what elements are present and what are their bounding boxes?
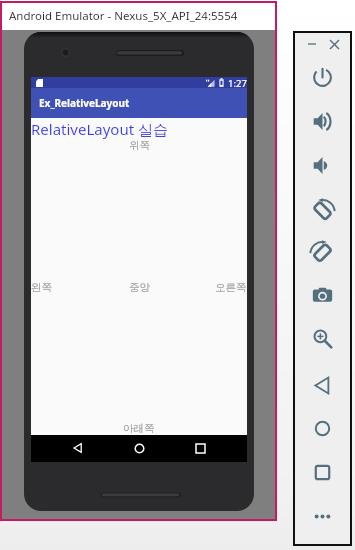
staticText: 왼쪽 xyxy=(31,281,52,294)
staticText: RelativeLayout 실습 xyxy=(31,119,169,139)
button[interactable]: Volume down xyxy=(300,147,344,183)
button[interactable]: Screenshot xyxy=(300,277,344,313)
button[interactable]: Minimize xyxy=(303,35,321,53)
button[interactable]: Home xyxy=(300,410,344,446)
staticText: 오른쪽 xyxy=(215,281,247,294)
button[interactable]: More xyxy=(300,498,344,534)
staticText: 1:27 xyxy=(228,77,247,88)
staticText: Ex_RelativeLayout xyxy=(39,96,130,110)
button[interactable]: Home xyxy=(126,435,152,461)
staticText: 중앙 xyxy=(129,281,150,294)
button[interactable]: Volume up xyxy=(300,103,344,139)
button[interactable]: Close xyxy=(325,35,343,53)
button[interactable]: Power xyxy=(300,59,344,95)
staticText: Android Emulator - Nexus_5X_API_24:5554 xyxy=(9,8,238,24)
staticText: 아래쪽 xyxy=(123,422,155,435)
button[interactable]: Back xyxy=(65,435,91,461)
button[interactable]: Back xyxy=(300,367,344,403)
button[interactable]: Overview xyxy=(300,454,344,490)
button[interactable]: Ex_RelativeLayout xyxy=(31,88,247,118)
button[interactable]: Zoom xyxy=(300,320,344,356)
button[interactable]: Rotate left xyxy=(300,191,344,227)
staticText: 위쪽 xyxy=(129,139,150,152)
button[interactable]: Recents xyxy=(187,435,213,461)
button[interactable]: Rotate right xyxy=(300,233,344,269)
